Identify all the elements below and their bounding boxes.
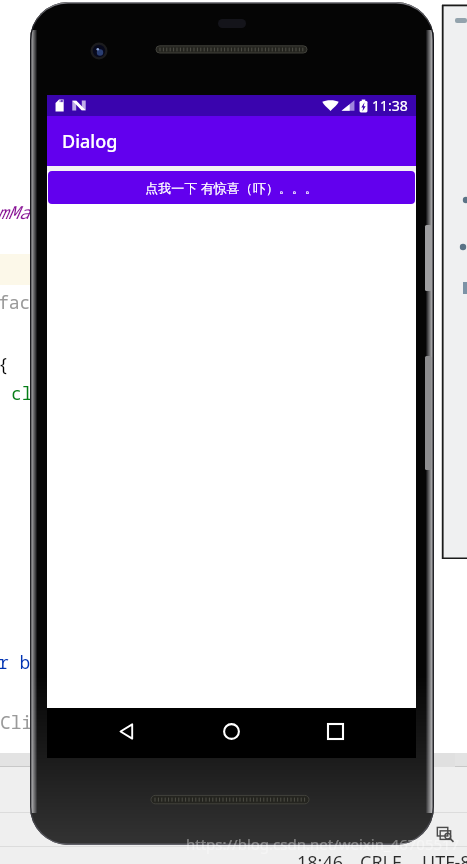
button[interactable]: Back: [102, 707, 150, 755]
button[interactable]: 点我一下 有惊喜（吓）。。。: [48, 171, 415, 204]
staticText: Dialog: [62, 129, 118, 154]
staticText: 点我一下 有惊喜（吓）。。。: [145, 179, 318, 197]
button[interactable]: Home: [207, 707, 255, 755]
staticText: CRLF: [360, 850, 402, 864]
staticText: https://blog.csdn.net/weixin_46705517: [186, 834, 460, 854]
staticText: Cli: [0, 710, 33, 735]
staticText: UTF-8: [422, 850, 467, 864]
button[interactable]: Recent apps: [311, 707, 359, 755]
staticText: {: [0, 352, 9, 377]
staticText: r b: [0, 650, 31, 675]
staticText: 11:38: [372, 96, 408, 115]
staticText: fac: [0, 290, 31, 315]
staticText: mMa: [0, 200, 30, 225]
staticText: 18:46: [297, 850, 344, 864]
staticText: cl: [11, 381, 33, 406]
